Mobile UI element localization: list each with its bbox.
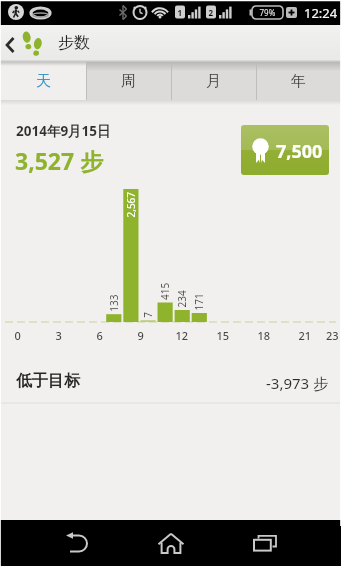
button[interactable]: 月	[171, 62, 256, 100]
staticText: 7,500	[276, 139, 323, 164]
button[interactable]: 年	[256, 62, 341, 100]
staticText: -3,973 步	[266, 373, 329, 393]
button[interactable]: 周	[86, 62, 171, 100]
staticText: 步数	[58, 33, 90, 53]
button[interactable]	[44, 520, 112, 566]
button[interactable]: 天	[0, 62, 86, 100]
staticText: 2014年9月15日	[16, 122, 111, 140]
button[interactable]	[137, 520, 205, 566]
button[interactable]: 步数	[0, 25, 341, 62]
staticText: 3,527 步	[15, 145, 104, 176]
staticText: 天	[36, 72, 51, 91]
staticText: 周	[121, 72, 136, 91]
staticText: 低于目标	[16, 371, 80, 391]
staticText: 年	[291, 72, 306, 91]
button[interactable]: 7,500	[241, 125, 329, 175]
staticText: 月	[206, 72, 221, 91]
button[interactable]	[231, 520, 299, 566]
